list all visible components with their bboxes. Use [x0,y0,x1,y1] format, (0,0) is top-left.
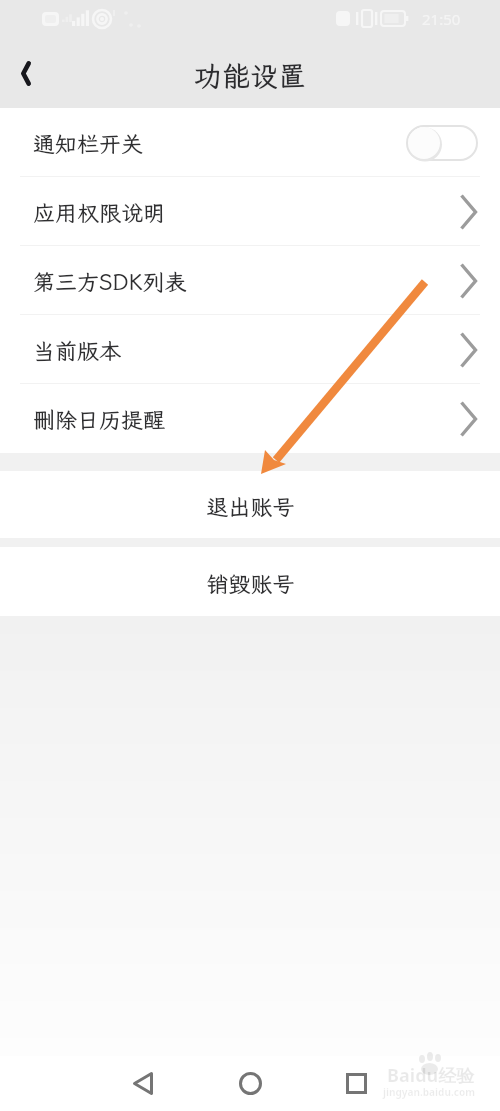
button[interactable]: 第三方SDK列表 [0,246,500,315]
other: Open 应用权限说明 [460,194,477,230]
button[interactable]: Back [0,47,52,99]
staticText: 应用权限说明 [33,198,166,227]
staticText: 销毁账号 [206,569,295,598]
button[interactable]: 退出账号 [0,471,500,538]
button[interactable]: Back [110,1056,176,1111]
staticText: 21:50 [422,9,461,29]
button[interactable]: 应用权限说明 [0,177,500,246]
other: Open 第三方SDK列表 [460,263,477,299]
button[interactable]: 销毁账号 [0,547,500,616]
button[interactable]: 通知栏开关 [0,108,500,177]
staticText: 当前版本 [33,336,122,365]
staticText: 退出账号 [206,492,295,521]
button[interactable]: Notification bar switch [406,125,478,161]
button[interactable]: 删除日历提醒 [0,384,500,453]
staticText: 第三方SDK列表 [33,267,187,296]
button[interactable]: 当前版本 [0,315,500,384]
other: Open 删除日历提醒 [460,401,477,437]
staticText: 删除日历提醒 [33,405,166,434]
staticText: 功能设置 [194,57,307,94]
staticText: jingyan.baidu.com [383,1085,475,1099]
button[interactable]: Recent apps [323,1056,389,1111]
button[interactable]: Home [217,1056,283,1111]
staticText: 通知栏开关 [33,129,144,158]
staticText: Baidu经验 [387,1063,475,1088]
other: Open 当前版本 [460,332,477,368]
